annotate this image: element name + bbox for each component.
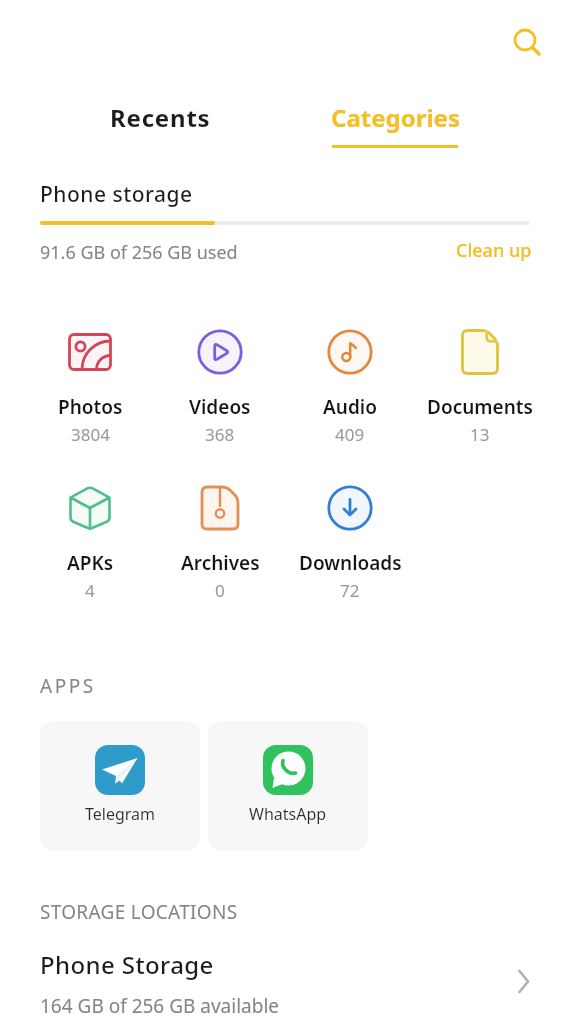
button[interactable]: WhatsApp bbox=[208, 721, 368, 851]
staticText: Archives bbox=[181, 550, 260, 576]
staticText: Phone storage bbox=[40, 180, 193, 209]
button[interactable]: Telegram bbox=[40, 721, 200, 851]
staticText: 4 bbox=[85, 579, 95, 602]
staticText: 91.6 GB of 256 GB used bbox=[40, 240, 238, 265]
staticText: 409 bbox=[335, 423, 365, 446]
staticText: Recents bbox=[110, 101, 211, 134]
staticText: STORAGE LOCATIONS bbox=[40, 899, 238, 925]
button[interactable]: Archives bbox=[155, 466, 285, 606]
staticText: 72 bbox=[340, 579, 360, 602]
staticText: Documents bbox=[427, 394, 533, 420]
staticText: APKs bbox=[67, 550, 114, 576]
button[interactable]: Videos bbox=[155, 310, 285, 450]
staticText: 164 GB of 256 GB available bbox=[40, 993, 280, 1019]
button[interactable]: Downloads bbox=[285, 466, 415, 606]
button[interactable]: Phone Storage bbox=[0, 935, 563, 1024]
staticText: Telegram bbox=[85, 803, 156, 825]
staticText: Videos bbox=[189, 394, 251, 420]
button[interactable] bbox=[505, 20, 547, 62]
button[interactable]: APKs bbox=[25, 466, 155, 606]
staticText: Photos bbox=[58, 394, 123, 420]
staticText: Audio bbox=[323, 394, 377, 420]
staticText: 13 bbox=[470, 423, 490, 446]
button[interactable]: Clean up bbox=[440, 234, 532, 266]
staticText: Clean up bbox=[456, 238, 532, 263]
button[interactable]: Categories bbox=[315, 95, 475, 139]
staticText: Downloads bbox=[299, 550, 402, 576]
button[interactable]: Recents bbox=[80, 95, 240, 139]
staticText: 3804 bbox=[71, 423, 110, 446]
staticText: 368 bbox=[205, 423, 235, 446]
button[interactable]: Documents bbox=[415, 310, 545, 450]
staticText: Categories bbox=[331, 101, 460, 134]
staticText: Phone Storage bbox=[40, 948, 214, 981]
staticText: 0 bbox=[215, 579, 225, 602]
button[interactable]: Audio bbox=[285, 310, 415, 450]
staticText: WhatsApp bbox=[249, 803, 327, 825]
button[interactable]: Photos bbox=[25, 310, 155, 450]
staticText: APPS bbox=[40, 673, 96, 699]
